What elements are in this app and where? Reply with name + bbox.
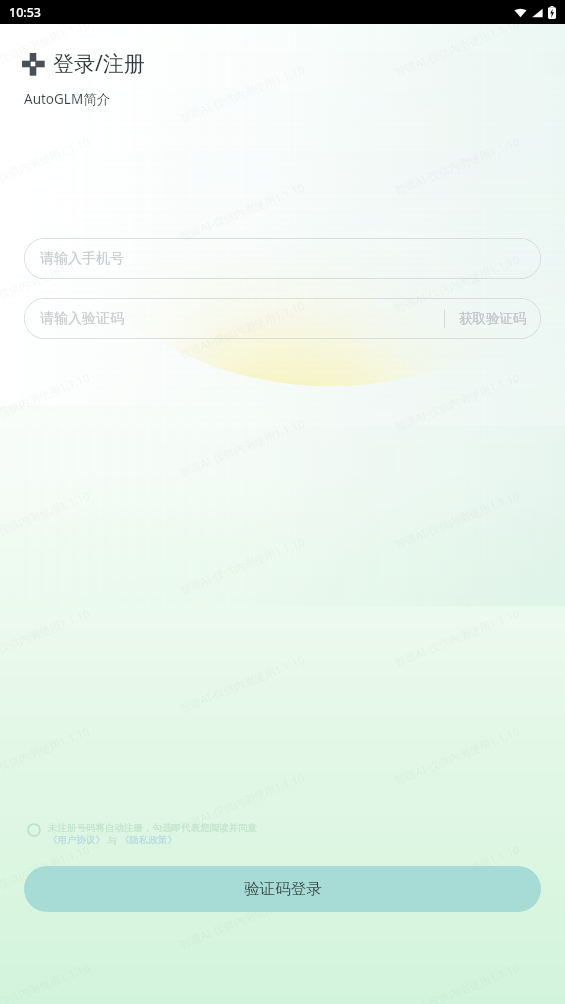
staticText: 登录/注册: [53, 49, 145, 78]
staticText: 《用户协议》: [48, 834, 105, 846]
staticText: 智谱AI-仅供内测使用1.1.10: [392, 15, 522, 79]
staticText: 智谱AI-仅供内测使用1.1.10: [392, 251, 522, 315]
staticText: 与: [105, 834, 120, 847]
staticText: 验证码登录: [244, 879, 322, 899]
staticText: 智谱AI-仅供内测使用1.1.10: [177, 769, 307, 833]
staticText: 请输入验证码: [40, 310, 124, 328]
button[interactable]: AutoGLM简介: [24, 88, 111, 110]
button[interactable]: 同意协议: [27, 823, 41, 837]
staticText: 智谱AI-仅供内测使用1.1.10: [0, 15, 92, 79]
staticText: 智谱AI-仅供内测使用1.1.10: [177, 297, 307, 361]
staticText: AutoGLM简介: [24, 90, 111, 108]
staticText: 《隐私政策》: [120, 834, 177, 846]
button[interactable]: 请输入手机号: [24, 238, 541, 279]
button[interactable]: 《隐私政策》: [120, 834, 177, 846]
button[interactable]: 获取验证码: [445, 300, 541, 337]
staticText: 智谱AI-仅供内测使用1.1.10: [0, 841, 92, 905]
staticText: 10:53: [9, 4, 42, 21]
staticText: 智谱AI-仅供内测使用1.1.10: [392, 369, 522, 433]
staticText: 智谱AI-仅供内测使用1.1.10: [392, 841, 522, 905]
button[interactable]: 请输入验证码: [24, 298, 541, 339]
staticText: 请输入手机号: [40, 250, 124, 268]
button[interactable]: 《用户协议》: [48, 834, 105, 846]
staticText: 获取验证码: [459, 310, 527, 327]
button[interactable]: 验证码登录: [24, 866, 541, 912]
staticText: 未注册号码将自动注册，勾选即代表您阅读并同意: [48, 822, 257, 834]
staticText: 智谱AI-仅供内测使用1.1.10: [177, 887, 307, 951]
staticText: 智谱AI-仅供内测使用1.1.10: [0, 251, 92, 315]
staticText: 智谱AI-仅供内测使用1.1.10: [177, 179, 307, 243]
